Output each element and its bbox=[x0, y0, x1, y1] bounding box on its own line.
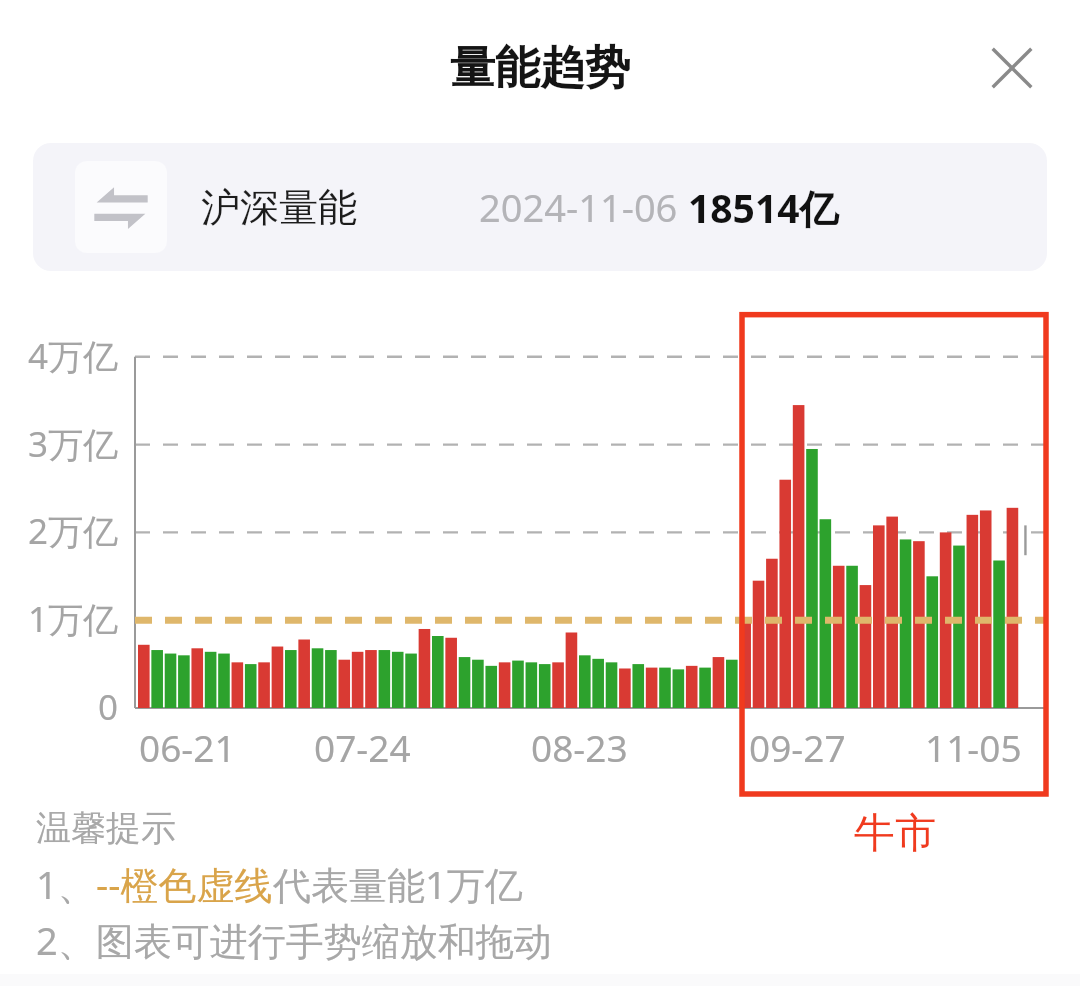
staticText: 牛市 bbox=[854, 808, 936, 860]
staticText: 4万亿 bbox=[0, 332, 118, 380]
staticText: --橙色虚线 bbox=[96, 858, 273, 910]
button[interactable]: Close bbox=[979, 35, 1045, 101]
staticText: 18514亿 bbox=[688, 181, 839, 234]
staticText: 09-27 bbox=[749, 722, 846, 772]
staticText: 11-05 bbox=[925, 722, 1022, 772]
staticText: 08-23 bbox=[531, 722, 628, 772]
button[interactable]: 沪深量能 bbox=[33, 143, 1047, 271]
staticText: 06-21 bbox=[139, 722, 236, 772]
staticText: 沪深量能 bbox=[201, 183, 357, 232]
staticText: 1万亿 bbox=[0, 595, 118, 643]
staticText: 代表量能1万亿 bbox=[273, 858, 523, 910]
staticText: 温馨提示 bbox=[36, 806, 176, 850]
staticText: 1、 bbox=[36, 858, 96, 910]
staticText: 2万亿 bbox=[0, 507, 118, 555]
staticText: 3万亿 bbox=[0, 420, 118, 468]
staticText: 量能趋势 bbox=[0, 40, 1080, 97]
staticText: 07-24 bbox=[314, 722, 411, 772]
staticText: 0 bbox=[0, 683, 118, 731]
staticText: 2024-11-06 bbox=[479, 181, 678, 233]
staticText: 2、图表可进行手势缩放和拖动 bbox=[36, 914, 552, 966]
